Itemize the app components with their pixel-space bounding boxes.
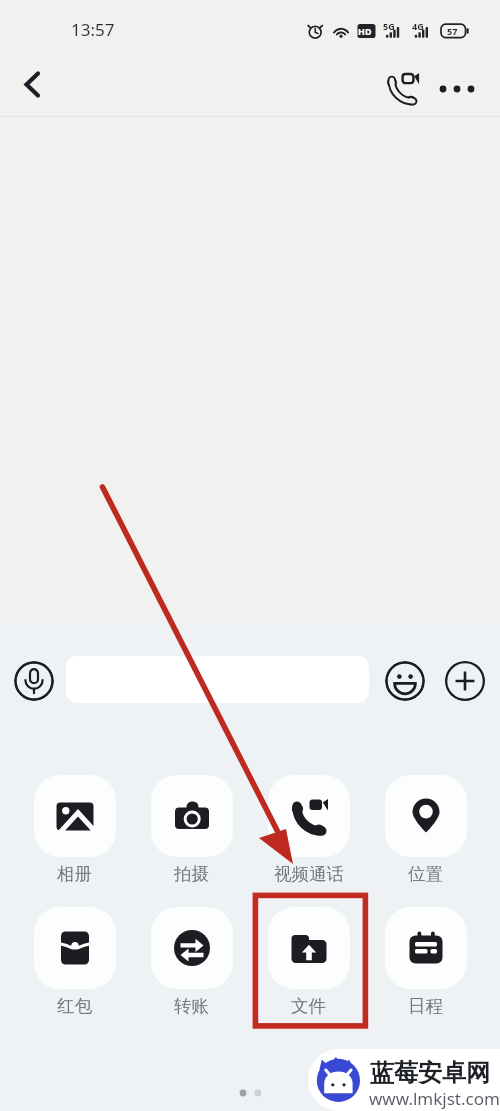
- staticText: www.lmkjst.com: [369, 1087, 500, 1110]
- staticText: 文件: [291, 995, 326, 1017]
- button[interactable]: Emoji: [385, 661, 425, 701]
- staticText: 日程: [408, 995, 443, 1017]
- button[interactable]: 视频通话: [267, 775, 350, 885]
- staticText: 4G: [412, 20, 424, 32]
- staticText: 57: [447, 25, 458, 37]
- button[interactable]: 拍摄: [150, 775, 233, 885]
- staticText: 视频通话: [274, 863, 344, 885]
- button[interactable]: Voice input: [14, 661, 54, 701]
- staticText: HD: [358, 25, 372, 37]
- button[interactable]: 日程: [384, 907, 467, 1017]
- button[interactable]: 文件: [267, 907, 350, 1017]
- button[interactable]: 转账: [150, 907, 233, 1017]
- staticText: 转账: [174, 995, 209, 1017]
- button[interactable]: Add attachment: [445, 661, 485, 701]
- staticText: 5G: [383, 20, 395, 32]
- button[interactable]: More options: [428, 61, 480, 113]
- staticText: 13:57: [71, 18, 115, 41]
- button[interactable]: 红包: [33, 907, 116, 1017]
- staticText: 蓝莓安卓网: [370, 1058, 490, 1088]
- staticText: 红包: [57, 995, 92, 1017]
- button[interactable]: 位置: [384, 775, 467, 885]
- button[interactable]: Back: [8, 63, 56, 111]
- staticText: 相册: [57, 863, 92, 885]
- staticText: 位置: [408, 863, 443, 885]
- button[interactable]: Message input field: [66, 656, 369, 703]
- button[interactable]: Video call: [376, 58, 428, 110]
- staticText: 拍摄: [174, 863, 209, 885]
- button[interactable]: 相册: [33, 775, 116, 885]
